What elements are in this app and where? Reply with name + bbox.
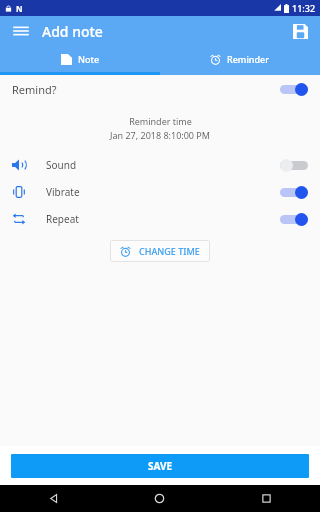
staticText: CHANGE TIME: [139, 245, 200, 257]
staticText: 11:32: [292, 2, 316, 14]
staticText: Repeat: [46, 212, 79, 226]
staticText: Add note: [42, 22, 103, 41]
button[interactable]: Back: [0, 485, 106, 512]
button[interactable]: [280, 212, 308, 226]
button[interactable]: Save note: [287, 18, 313, 44]
button[interactable]: Recent apps: [213, 485, 320, 512]
staticText: Jan 27, 2018 8:10:00 PM: [110, 129, 210, 141]
button[interactable]: Remind?: [0, 75, 320, 103]
button[interactable]: [280, 185, 308, 199]
staticText: Note: [78, 53, 100, 65]
button[interactable]: Sound: [0, 151, 320, 178]
button[interactable]: Home: [106, 485, 213, 512]
button[interactable]: SAVE: [11, 454, 309, 478]
button[interactable]: [280, 158, 308, 172]
staticText: N: [16, 3, 23, 14]
staticText: Remind?: [12, 82, 57, 97]
staticText: Reminder time: [129, 115, 192, 127]
button[interactable]: Reminder: [160, 46, 320, 72]
button[interactable]: Vibrate: [0, 178, 320, 205]
button[interactable]: [280, 82, 308, 96]
staticText: Reminder: [227, 53, 270, 65]
staticText: Vibrate: [46, 185, 80, 199]
button[interactable]: CHANGE TIME: [110, 240, 210, 262]
staticText: Sound: [46, 158, 77, 172]
button[interactable]: Repeat: [0, 205, 320, 232]
staticText: SAVE: [148, 459, 173, 473]
button[interactable]: Note: [0, 46, 160, 72]
button[interactable]: Open navigation menu: [8, 18, 34, 44]
